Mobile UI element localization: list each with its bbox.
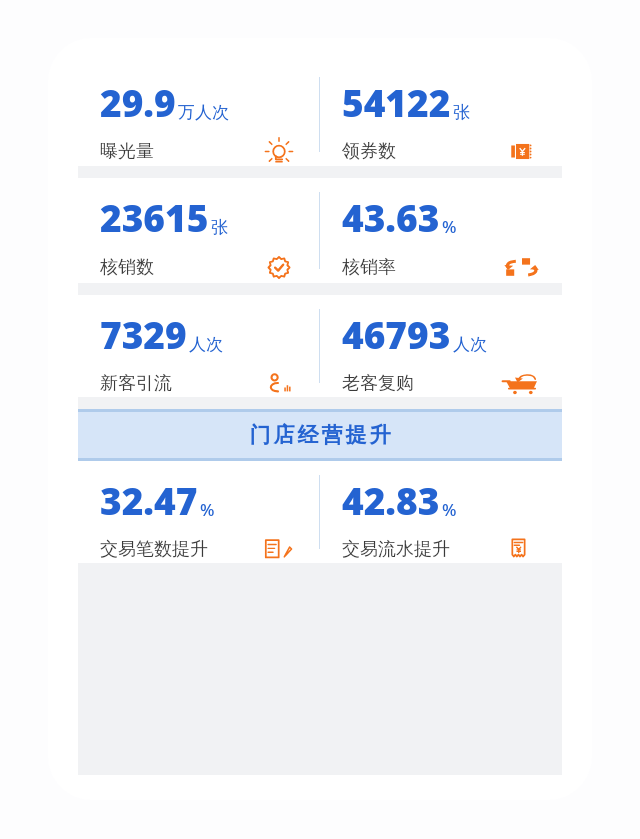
other: 新客引流 <box>257 369 301 397</box>
staticText: 核销率 <box>342 256 396 279</box>
staticText: % <box>442 215 457 238</box>
other: 领券数 <box>500 137 544 166</box>
other: 曝光量 <box>257 137 301 166</box>
button[interactable]: 54122 <box>320 63 562 166</box>
button[interactable]: 23615 <box>78 178 319 283</box>
staticText: 万人次 <box>178 102 229 123</box>
staticText: 42.83 <box>342 475 440 525</box>
staticText: 张 <box>211 217 228 238</box>
staticText: 46793 <box>342 309 451 359</box>
other: 核销率 <box>500 252 544 283</box>
button[interactable]: 43.63 <box>320 178 562 283</box>
button[interactable]: 46793 <box>320 295 562 397</box>
other: 核销数 <box>257 252 301 283</box>
staticText: 曝光量 <box>100 140 154 163</box>
staticText: % <box>200 498 215 521</box>
staticText: 新客引流 <box>100 372 172 395</box>
button[interactable]: 门店经营提升 <box>78 409 562 461</box>
staticText: % <box>442 498 457 521</box>
button[interactable]: 7329 <box>78 295 319 397</box>
staticText: 交易流水提升 <box>342 538 450 561</box>
button[interactable]: 32.47 <box>78 461 319 563</box>
staticText: 43.63 <box>342 192 440 242</box>
staticText: 23615 <box>100 192 209 242</box>
staticText: 人次 <box>453 334 487 355</box>
staticText: 32.47 <box>100 475 198 525</box>
other: 交易流水提升 <box>500 535 544 563</box>
staticText: 人次 <box>189 334 223 355</box>
button[interactable]: 42.83 <box>320 461 562 563</box>
other: 老客复购 <box>500 369 544 397</box>
other: 交易笔数提升 <box>257 535 301 563</box>
staticText: 老客复购 <box>342 372 414 395</box>
staticText: 张 <box>453 102 470 123</box>
staticText: 54122 <box>342 77 451 127</box>
staticText: 29.9 <box>100 77 176 127</box>
staticText: 7329 <box>100 309 187 359</box>
staticText: 核销数 <box>100 256 154 279</box>
staticText: 领券数 <box>342 140 396 163</box>
staticText: 门店经营提升 <box>248 422 392 448</box>
button[interactable]: 29.9 <box>78 63 319 166</box>
staticText: 交易笔数提升 <box>100 538 208 561</box>
